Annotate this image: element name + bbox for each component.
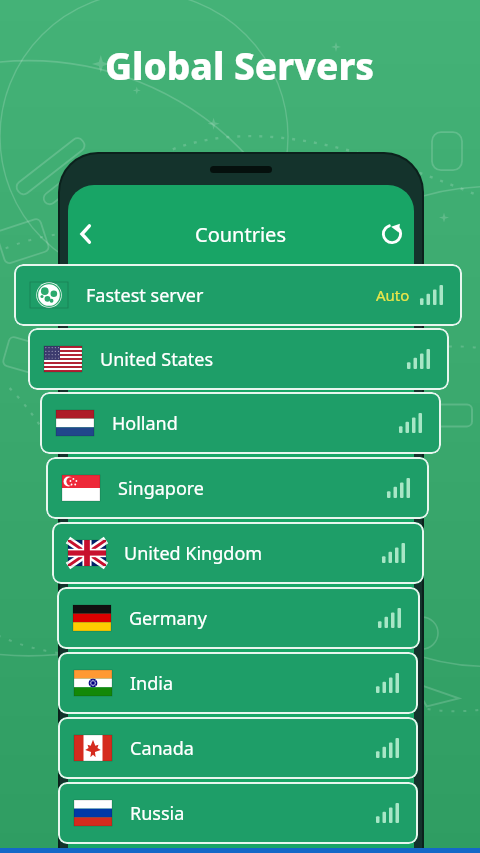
staticText: Singapore xyxy=(118,476,205,501)
button[interactable]: Canada xyxy=(58,717,418,779)
button[interactable]: United States xyxy=(28,328,449,390)
button[interactable]: Refresh xyxy=(370,212,414,256)
button[interactable]: India xyxy=(58,652,418,714)
staticText: Canada xyxy=(130,736,194,761)
button[interactable]: United Kingdom xyxy=(52,522,424,584)
button[interactable]: Russia xyxy=(58,782,418,844)
staticText: Fastest server xyxy=(86,283,204,308)
button[interactable]: Back xyxy=(64,212,108,256)
staticText: Russia xyxy=(130,801,185,826)
staticText: Auto xyxy=(376,285,410,305)
staticText: United Kingdom xyxy=(124,541,263,566)
button[interactable]: Fastest server xyxy=(14,264,462,326)
staticText: India xyxy=(130,671,174,696)
button[interactable]: Singapore xyxy=(46,457,429,519)
staticText: Countries xyxy=(195,221,286,248)
button[interactable]: Holland xyxy=(40,392,441,454)
staticText: United States xyxy=(100,347,214,372)
staticText: Germany xyxy=(129,606,207,631)
staticText: Global Servers xyxy=(105,40,375,90)
staticText: Holland xyxy=(112,411,178,436)
button[interactable]: Germany xyxy=(57,587,420,649)
